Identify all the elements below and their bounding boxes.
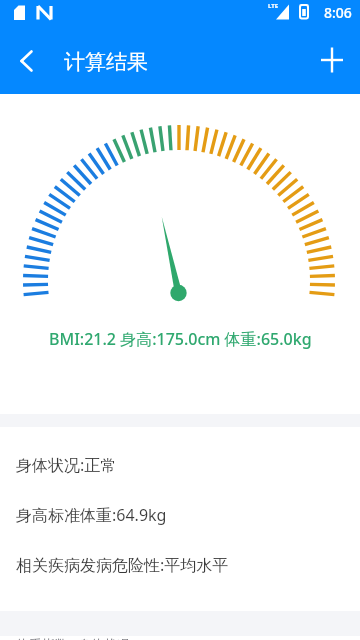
staticText: 计算结果 (64, 49, 148, 75)
staticText: 身体状况:正常 (16, 454, 117, 476)
staticText: BMI:21.2 身高:175.0cm 体重:65.0kg (49, 328, 312, 350)
staticText: 相关疾病发病危险性:平均水平 (16, 554, 229, 576)
staticText: 身体状况 (78, 636, 130, 640)
staticText: LTE (268, 2, 279, 10)
button[interactable]: 相关疾病发病危险性:平均水平 (0, 540, 360, 590)
staticText: 8:06 (324, 3, 352, 22)
button[interactable]: Back (10, 44, 44, 78)
staticText: 身高标准体重:64.9kg (16, 504, 167, 526)
button[interactable]: 身体状况:正常 (0, 440, 360, 490)
staticText: 体重指数 (16, 636, 68, 640)
button[interactable]: 体重指数 (0, 636, 360, 640)
button[interactable]: 身高标准体重:64.9kg (0, 490, 360, 540)
button[interactable]: Add (315, 43, 349, 77)
